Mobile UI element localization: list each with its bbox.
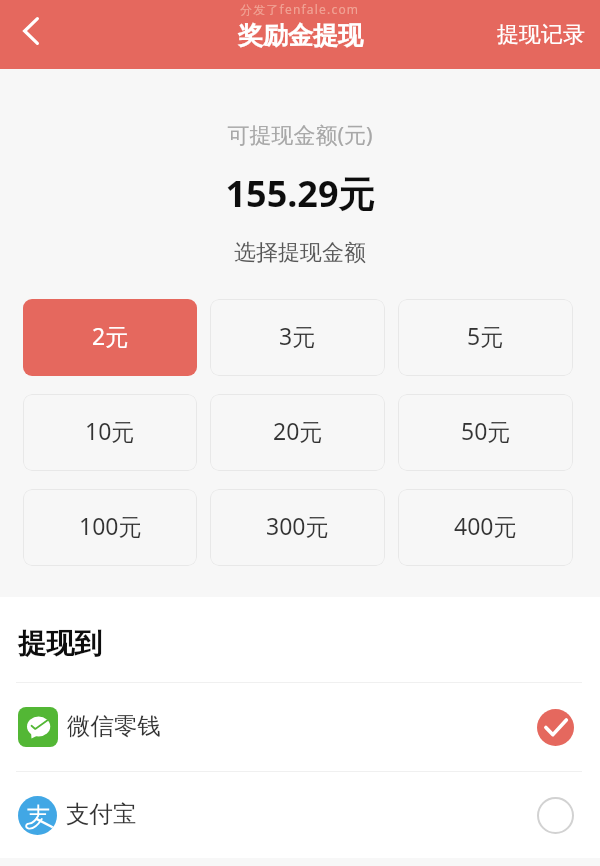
staticText: 提现到 — [18, 626, 102, 661]
button[interactable]: 50元 — [398, 394, 573, 471]
button[interactable]: 微信零钱 — [0, 683, 600, 771]
staticText: 5元 — [467, 320, 504, 351]
staticText: 400元 — [454, 510, 517, 541]
staticText: 分发了fenfale.com — [240, 1, 360, 17]
staticText: 300元 — [266, 510, 329, 541]
staticText: 选择提现金额 — [0, 239, 600, 267]
button[interactable]: 提现记录 — [479, 7, 600, 63]
staticText: 2元 — [92, 320, 129, 351]
button[interactable]: 支付宝 — [0, 772, 600, 858]
staticText: 20元 — [273, 415, 323, 446]
staticText: 可提现金额(元) — [0, 119, 600, 149]
button[interactable]: Back — [6, 11, 54, 59]
button[interactable]: 400元 — [398, 489, 573, 566]
button[interactable]: 2元 — [23, 299, 197, 376]
staticText: 10元 — [85, 415, 135, 446]
staticText: 50元 — [461, 415, 511, 446]
button[interactable]: 20元 — [210, 394, 385, 471]
button[interactable]: 100元 — [23, 489, 197, 566]
button[interactable]: 300元 — [210, 489, 385, 566]
staticText: 奖励金提现 — [238, 20, 363, 51]
staticText: 提现记录 — [497, 21, 585, 49]
staticText: 100元 — [79, 510, 142, 541]
button[interactable]: 10元 — [23, 394, 197, 471]
button[interactable]: 3元 — [210, 299, 385, 376]
button[interactable]: 5元 — [398, 299, 573, 376]
staticText: 155.29元 — [0, 169, 600, 218]
staticText: 支付宝 — [66, 799, 137, 829]
staticText: 3元 — [279, 320, 316, 351]
staticText: 微信零钱 — [67, 711, 161, 741]
